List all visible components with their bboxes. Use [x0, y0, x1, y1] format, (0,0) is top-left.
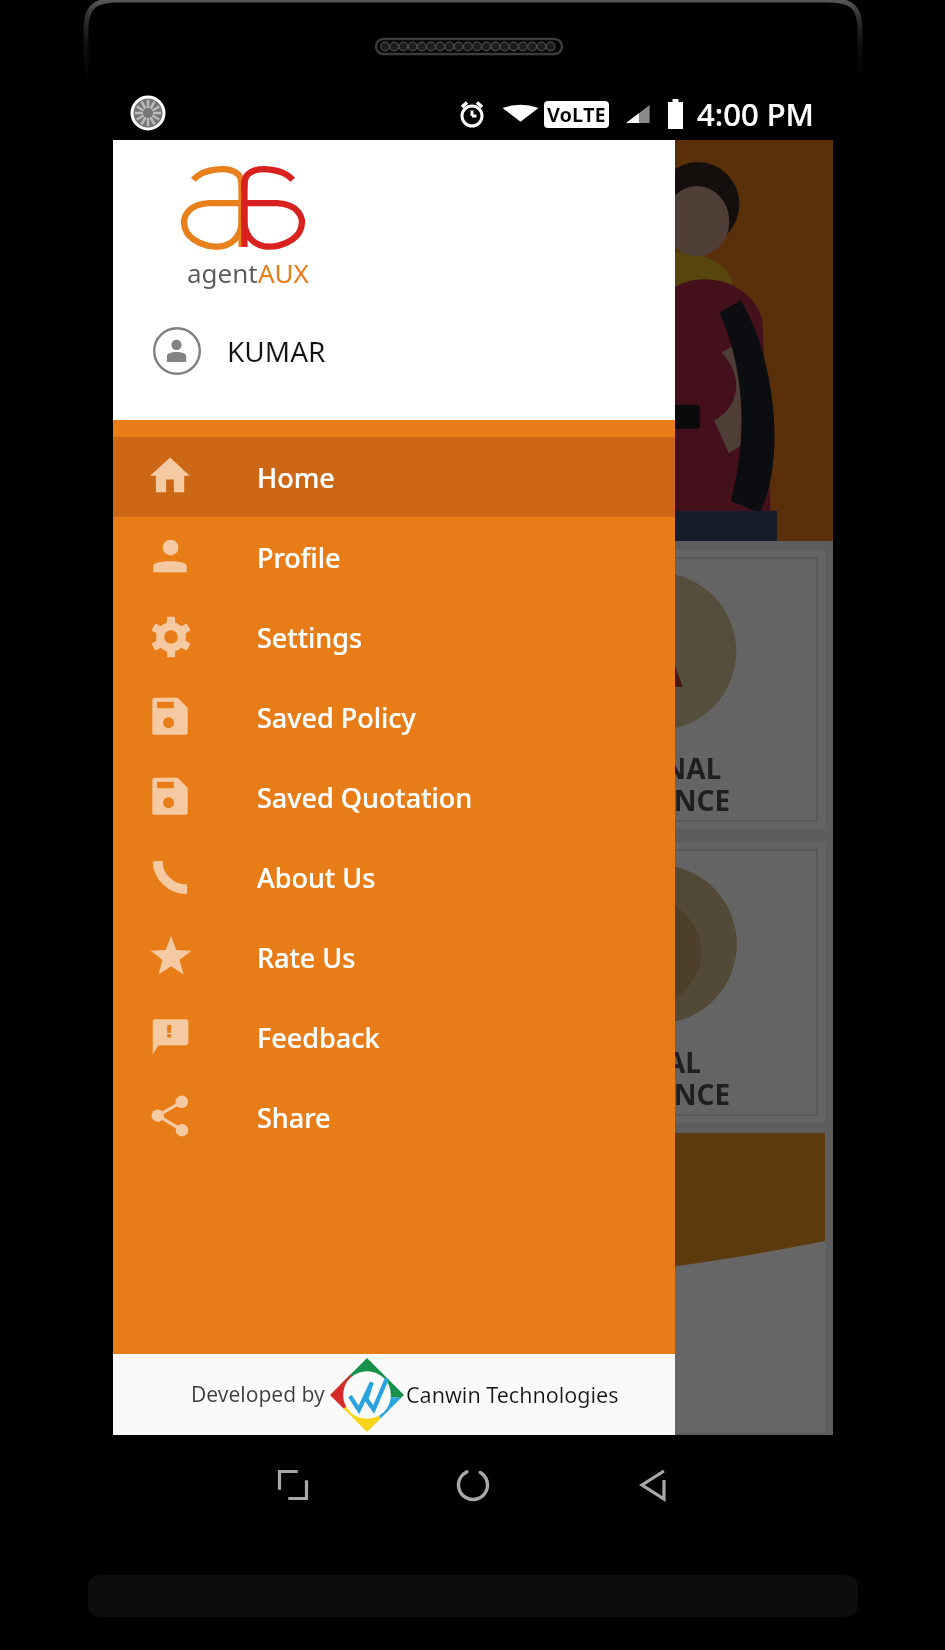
button[interactable]: Feedback	[113, 997, 675, 1077]
staticText: VoLTE	[547, 101, 606, 128]
button[interactable]: Recent apps	[259, 1451, 327, 1519]
button[interactable]: Back	[619, 1451, 687, 1519]
button[interactable]: Saved Quotation	[113, 757, 675, 837]
button[interactable]: Rate Us	[113, 917, 675, 997]
staticText: Settings	[257, 619, 363, 656]
button[interactable]: Settings	[113, 597, 675, 677]
staticText: Saved Quotation	[257, 779, 473, 816]
staticText: agent	[187, 255, 258, 290]
staticText: AUX	[258, 255, 309, 290]
button[interactable]: KUMAR	[113, 319, 675, 383]
button[interactable]: PERSONAL INSURANCE	[121, 550, 825, 829]
staticText: RENTAL INSURANCE	[483, 1043, 813, 1113]
staticText: Rate Us	[257, 939, 356, 976]
button[interactable]: About Us	[113, 837, 675, 917]
staticText: PERSONAL INSURANCE	[483, 749, 813, 819]
button[interactable]: Saved Policy	[113, 677, 675, 757]
button[interactable]: Share	[113, 1077, 675, 1157]
button[interactable]: Home	[113, 437, 675, 517]
staticText: Profile	[257, 539, 341, 576]
staticText: Developed by	[191, 1380, 325, 1409]
staticText: Home	[257, 459, 335, 496]
staticText: Feedback	[257, 1019, 380, 1056]
button[interactable]: RENTAL INSURANCE	[121, 842, 825, 1123]
staticText: 4:00 PM	[697, 93, 815, 135]
staticText: Saved Policy	[257, 699, 416, 736]
staticText: KUMAR	[227, 332, 326, 370]
button[interactable]: Profile	[113, 517, 675, 597]
staticText: About Us	[257, 859, 376, 896]
button[interactable]: Home	[439, 1451, 507, 1519]
staticText: Canwin Technologies	[406, 1380, 619, 1409]
staticText: Share	[257, 1099, 331, 1136]
